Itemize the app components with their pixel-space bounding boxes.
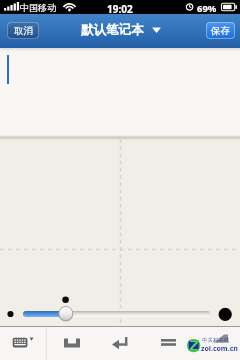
- staticText: 默认笔记本: [81, 22, 144, 38]
- staticText: zol.com.cn: [201, 344, 238, 354]
- button[interactable]: Menu: [152, 330, 178, 356]
- staticText: 取消: [14, 25, 33, 37]
- button[interactable]: Return: [106, 329, 134, 357]
- staticText: 中国移动: [20, 2, 56, 13]
- button[interactable]: Space: [58, 330, 86, 356]
- button[interactable]: 取消: [7, 22, 39, 39]
- staticText: 保存: [211, 25, 230, 37]
- button[interactable]: Keyboard: [6, 330, 40, 356]
- staticText: 69%: [197, 2, 217, 15]
- staticText: 19:02: [107, 2, 133, 16]
- button[interactable]: 默认笔记本: [81, 22, 161, 38]
- staticText: 中关村在线: [202, 337, 230, 344]
- button[interactable]: 保存: [206, 22, 235, 39]
